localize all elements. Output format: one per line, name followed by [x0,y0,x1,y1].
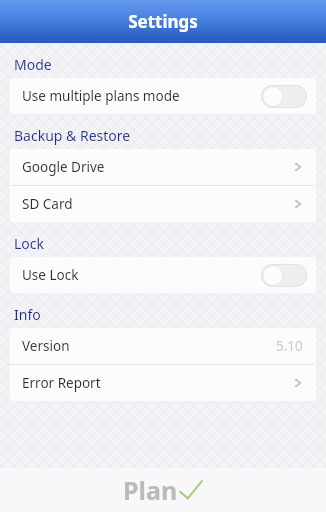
other: Open [291,376,305,390]
staticText: Error Report [22,374,101,392]
button[interactable]: Toggle, off [261,85,307,108]
staticText: Info [14,305,41,324]
staticText: Lock [14,234,45,253]
button[interactable]: Use multiple plans mode [10,78,316,114]
staticText: Settings [128,10,198,33]
staticText: 5.10 [276,337,303,355]
button[interactable]: Error Report [10,365,316,401]
staticText: Mode [14,55,52,74]
staticText: SD Card [22,195,73,213]
staticText: Use Lock [22,266,79,284]
staticText: Version [22,337,70,355]
button[interactable]: Version [10,328,316,364]
staticText: Use multiple plans mode [22,87,180,105]
staticText: Plan [123,473,178,507]
staticText: Backup & Restore [14,126,131,145]
button[interactable]: Toggle, off [261,264,307,287]
staticText: Google Drive [22,158,105,176]
button[interactable]: Use Lock [10,257,316,293]
button[interactable]: Google Drive [10,149,316,185]
other: Open [291,197,305,211]
other: Open [291,160,305,174]
button[interactable]: SD Card [10,186,316,222]
